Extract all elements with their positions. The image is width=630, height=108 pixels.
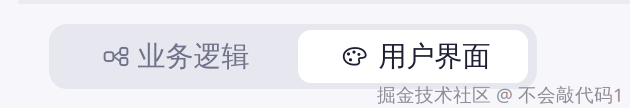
staticText: 业务逻辑 xyxy=(137,39,249,74)
staticText: 掘金技术社区 @ 不会敲代码1 xyxy=(377,82,624,107)
button[interactable]: 业务逻辑 xyxy=(55,30,298,83)
button[interactable]: 用户界面 xyxy=(298,30,528,83)
staticText: 用户界面 xyxy=(378,39,490,74)
